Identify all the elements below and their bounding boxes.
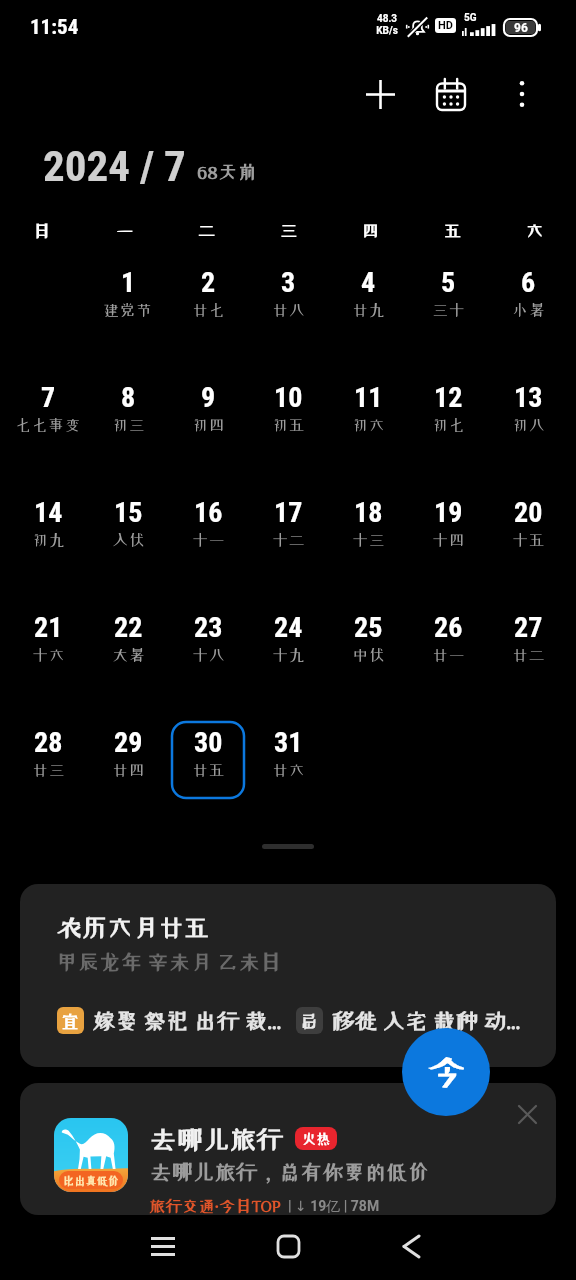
staticText: 十五 bbox=[512, 532, 545, 548]
button[interactable]: 8 bbox=[88, 381, 168, 496]
staticText: 旅行交通·今日TOP bbox=[149, 1195, 281, 1215]
staticText: 9 bbox=[201, 381, 216, 414]
staticText: 30 bbox=[194, 726, 223, 759]
staticText: 去哪儿旅行 bbox=[150, 1126, 284, 1152]
button[interactable]: 6 bbox=[488, 266, 568, 381]
staticText: HD bbox=[438, 19, 453, 32]
button[interactable]: 25 bbox=[328, 611, 408, 726]
button[interactable]: 10 bbox=[248, 381, 328, 496]
staticText: | ↓ 19亿 | 78M bbox=[288, 1198, 380, 1215]
button[interactable]: 14 bbox=[8, 496, 88, 611]
staticText: 廿六 bbox=[272, 762, 305, 778]
button[interactable]: 26 bbox=[408, 611, 488, 726]
staticText: 28 bbox=[34, 726, 63, 759]
button[interactable]: 24 bbox=[248, 611, 328, 726]
staticText: 一 bbox=[116, 222, 134, 239]
button[interactable]: 1 bbox=[88, 266, 168, 381]
staticText: 48.3 KB/s bbox=[376, 13, 398, 36]
button[interactable]: 农历六月廿五 bbox=[20, 884, 556, 1067]
button[interactable]: 19 bbox=[408, 496, 488, 611]
staticText: 17 bbox=[274, 496, 303, 529]
staticText: 今 bbox=[427, 1053, 466, 1091]
staticText: 23 bbox=[194, 611, 223, 644]
staticText: 31 bbox=[274, 726, 303, 759]
staticText: 29 bbox=[114, 726, 143, 759]
staticText: 13 bbox=[514, 381, 543, 414]
button[interactable]: 12 bbox=[408, 381, 488, 496]
button[interactable]: Go to date bbox=[423, 66, 479, 122]
button[interactable]: 13 bbox=[488, 381, 568, 496]
button[interactable]: 31 bbox=[248, 726, 328, 841]
staticText: 初六 bbox=[352, 417, 385, 433]
staticText: 廿五 bbox=[192, 762, 225, 778]
button[interactable]: 5 bbox=[408, 266, 488, 381]
staticText: 廿二 bbox=[512, 647, 545, 663]
staticText: 19 bbox=[434, 496, 463, 529]
staticText: 廿三 bbox=[32, 762, 65, 778]
staticText: 初三 bbox=[112, 417, 145, 433]
button[interactable]: 16 bbox=[168, 496, 248, 611]
staticText: 15 bbox=[114, 496, 143, 529]
staticText: 四 bbox=[362, 222, 380, 239]
staticText: 火热 bbox=[302, 1132, 331, 1146]
staticText: 14 bbox=[34, 496, 63, 529]
staticText: 7 bbox=[41, 381, 56, 414]
button[interactable]: 11 bbox=[328, 381, 408, 496]
button[interactable]: 4 bbox=[328, 266, 408, 381]
button[interactable]: 22 bbox=[88, 611, 168, 726]
button[interactable]: 比出真低价 bbox=[20, 1083, 556, 1215]
staticText: 1 bbox=[121, 266, 136, 299]
button[interactable]: Recent apps bbox=[131, 1214, 195, 1278]
staticText: 宜 bbox=[61, 1012, 80, 1030]
staticText: 2024 / 7 bbox=[43, 141, 186, 191]
staticText: 10 bbox=[274, 381, 303, 414]
button[interactable]: 30 bbox=[168, 726, 248, 841]
staticText: 24 bbox=[274, 611, 303, 644]
button[interactable]: More options bbox=[494, 66, 550, 122]
staticText: 3 bbox=[281, 266, 296, 299]
staticText: 廿七 bbox=[192, 302, 225, 318]
staticText: 20 bbox=[514, 496, 543, 529]
button[interactable]: 27 bbox=[488, 611, 568, 726]
staticText: 68天前 bbox=[197, 162, 257, 181]
button[interactable]: Home bbox=[256, 1214, 320, 1278]
staticText: 5 bbox=[441, 266, 456, 299]
staticText: 初八 bbox=[512, 417, 545, 433]
staticText: 初九 bbox=[32, 532, 65, 548]
button[interactable]: 18 bbox=[328, 496, 408, 611]
button[interactable]: Add event bbox=[352, 66, 408, 122]
staticText: 初七 bbox=[432, 417, 465, 433]
staticText: 22 bbox=[114, 611, 143, 644]
button[interactable]: 2 bbox=[168, 266, 248, 381]
staticText: 初四 bbox=[192, 417, 225, 433]
staticText: 十八 bbox=[192, 647, 225, 663]
staticText: 十六 bbox=[32, 647, 65, 663]
staticText: 比出真低价 bbox=[63, 1175, 120, 1186]
button[interactable]: 7 bbox=[8, 381, 88, 496]
staticText: 去哪儿旅行，总有你要的低价 bbox=[150, 1162, 430, 1183]
button[interactable]: 17 bbox=[248, 496, 328, 611]
staticText: 16 bbox=[194, 496, 223, 529]
staticText: 4 bbox=[361, 266, 376, 299]
staticText: 廿四 bbox=[112, 762, 145, 778]
button[interactable]: 15 bbox=[88, 496, 168, 611]
button[interactable]: 9 bbox=[168, 381, 248, 496]
staticText: 二 bbox=[198, 222, 216, 239]
staticText: 十四 bbox=[432, 532, 465, 548]
button[interactable]: 29 bbox=[88, 726, 168, 841]
button[interactable]: Back bbox=[379, 1214, 443, 1278]
button[interactable]: 28 bbox=[8, 726, 88, 841]
button[interactable]: 23 bbox=[168, 611, 248, 726]
button[interactable]: Go to today bbox=[402, 1028, 490, 1116]
staticText: 25 bbox=[354, 611, 383, 644]
staticText: 忌 bbox=[300, 1012, 319, 1030]
staticText: 日 bbox=[33, 222, 51, 239]
staticText: 27 bbox=[514, 611, 543, 644]
button[interactable]: 21 bbox=[8, 611, 88, 726]
staticText: 5G bbox=[464, 12, 477, 24]
staticText: 建党节 bbox=[103, 302, 153, 318]
button[interactable]: 20 bbox=[488, 496, 568, 611]
button[interactable]: Close ad bbox=[504, 1091, 550, 1137]
button[interactable]: 3 bbox=[248, 266, 328, 381]
staticText: 18 bbox=[354, 496, 383, 529]
